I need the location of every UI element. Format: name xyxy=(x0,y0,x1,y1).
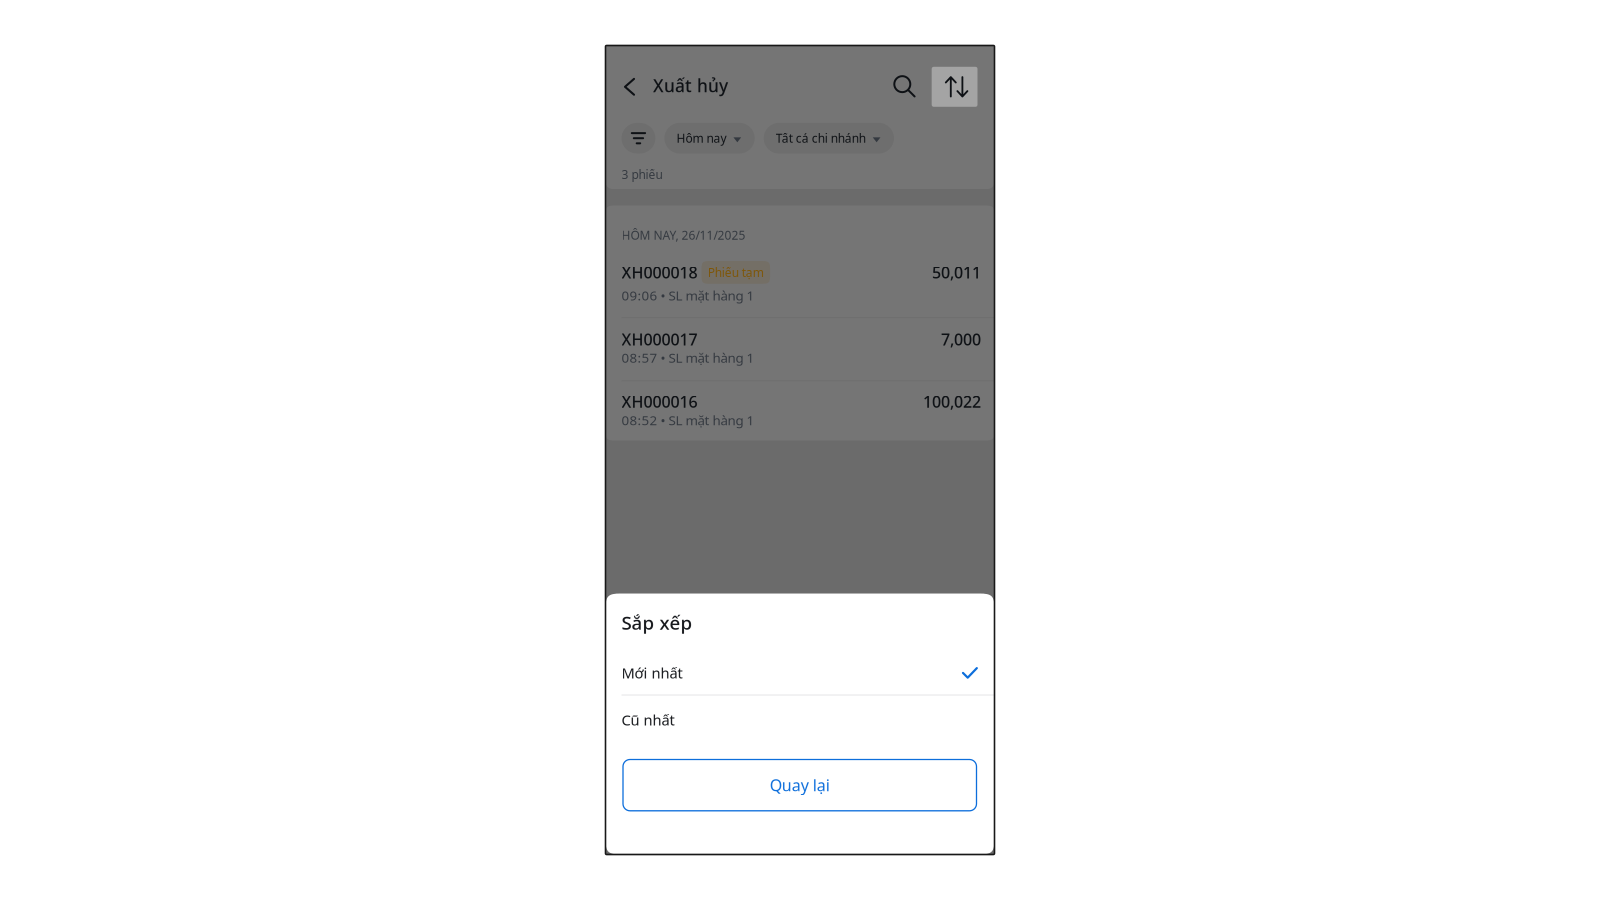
staticText: 7,000 xyxy=(941,329,981,350)
button[interactable]: Tìm kiếm xyxy=(887,67,932,107)
button[interactable]: XH000016 xyxy=(605,381,994,443)
staticText: XH000018 xyxy=(621,262,697,283)
button[interactable]: Bộ lọc xyxy=(621,123,655,153)
staticText: Mới nhất xyxy=(621,663,682,683)
button[interactable]: Tất cả chi nhánh xyxy=(764,123,894,154)
staticText: XH000016 xyxy=(621,391,697,412)
staticText: 50,011 xyxy=(932,262,981,283)
staticText: Phiếu tạm xyxy=(708,264,764,280)
button[interactable]: Mới nhất xyxy=(605,648,994,694)
staticText: 08:52 • SL mặt hàng 1 xyxy=(621,411,754,429)
staticText: 100,022 xyxy=(923,391,981,412)
staticText: Tất cả chi nhánh xyxy=(776,130,866,146)
staticText: 09:06 • SL mặt hàng 1 xyxy=(621,286,754,304)
button[interactable]: Cũ nhất xyxy=(605,695,994,741)
staticText: HÔM NAY, 26/11/2025 xyxy=(621,227,745,243)
staticText: Hôm nay xyxy=(676,130,726,146)
button[interactable]: Sắp xếp xyxy=(932,67,977,107)
staticText: Sắp xếp xyxy=(621,610,692,635)
button[interactable]: Quay lại xyxy=(623,759,976,811)
staticText: 3 phiếu xyxy=(621,166,662,182)
button[interactable]: Quay lại xyxy=(615,70,644,104)
staticText: Quay lại xyxy=(770,774,830,796)
button[interactable]: XH000018 xyxy=(605,251,994,317)
button[interactable]: XH000017 xyxy=(605,318,994,380)
staticText: 08:57 • SL mặt hàng 1 xyxy=(621,349,754,366)
button[interactable]: Hôm nay xyxy=(664,123,755,154)
staticText: Cũ nhất xyxy=(621,710,674,730)
staticText: Xuất hủy xyxy=(653,74,728,97)
staticText: XH000017 xyxy=(621,329,697,350)
